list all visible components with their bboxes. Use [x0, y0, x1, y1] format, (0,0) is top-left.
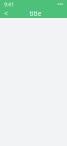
staticText: < [4, 9, 8, 18]
staticText: ••• [57, 1, 63, 8]
staticText: 9:41 [4, 1, 14, 8]
staticText: title [29, 9, 41, 18]
